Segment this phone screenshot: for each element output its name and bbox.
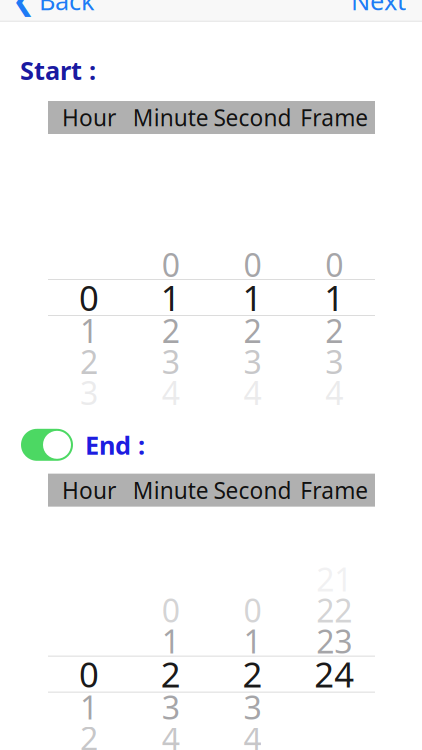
staticText: 3 [80, 371, 98, 414]
staticText: 3 [325, 340, 343, 383]
staticText: 4 [162, 717, 180, 750]
staticText: 1 [162, 620, 180, 662]
staticText: 2 [242, 651, 262, 697]
button[interactable]: Enable end timecode [21, 429, 73, 461]
staticText: 4 [162, 371, 180, 414]
staticText: Hour [62, 102, 116, 132]
staticText: 22 [316, 589, 352, 631]
staticText: 2 [162, 309, 180, 352]
staticText: Frame [300, 475, 368, 505]
staticText: 4 [243, 371, 261, 414]
staticText: Back [39, 0, 95, 17]
staticText: Second [213, 475, 291, 505]
button[interactable]: Next [335, 0, 422, 25]
staticText: Second [213, 102, 291, 132]
staticText: 2 [325, 309, 343, 352]
staticText: 21 [316, 558, 352, 600]
staticText: 4 [243, 717, 261, 750]
staticText: 1 [242, 274, 262, 320]
staticText: 3 [162, 686, 180, 728]
staticText: 1 [161, 274, 181, 320]
staticText: Hour [62, 475, 116, 505]
staticText: 1 [80, 309, 98, 352]
staticText: 1 [80, 686, 98, 728]
staticText: Frame [300, 102, 368, 132]
staticText: 5 [243, 748, 261, 750]
staticText: 3 [80, 748, 98, 750]
staticText: 2 [80, 717, 98, 750]
staticText: 0 [79, 651, 99, 697]
staticText: Minute [133, 102, 209, 132]
staticText: 5 [162, 748, 180, 750]
staticText: ❮ [12, 0, 35, 16]
staticText: 0 [162, 589, 180, 631]
staticText: 3 [162, 340, 180, 383]
staticText: Start : [20, 53, 96, 87]
staticText: 4 [325, 371, 343, 414]
staticText: 1 [324, 274, 344, 320]
staticText: 1 [243, 620, 261, 662]
staticText: 2 [161, 651, 181, 697]
staticText: 0 [162, 243, 180, 286]
staticText: 2 [243, 309, 261, 352]
staticText: 2 [80, 340, 98, 383]
staticText: 0 [243, 243, 261, 286]
staticText: 0 [243, 589, 261, 631]
staticText: 3 [243, 340, 261, 383]
staticText: 0 [79, 274, 99, 320]
staticText: 24 [314, 651, 354, 697]
staticText: 23 [316, 620, 352, 662]
button[interactable]: ❮ [0, 0, 109, 25]
staticText: 3 [243, 686, 261, 728]
staticText: Minute [133, 475, 209, 505]
staticText: End : [85, 428, 145, 462]
staticText: 0 [325, 243, 343, 286]
staticText: Next [351, 0, 406, 17]
